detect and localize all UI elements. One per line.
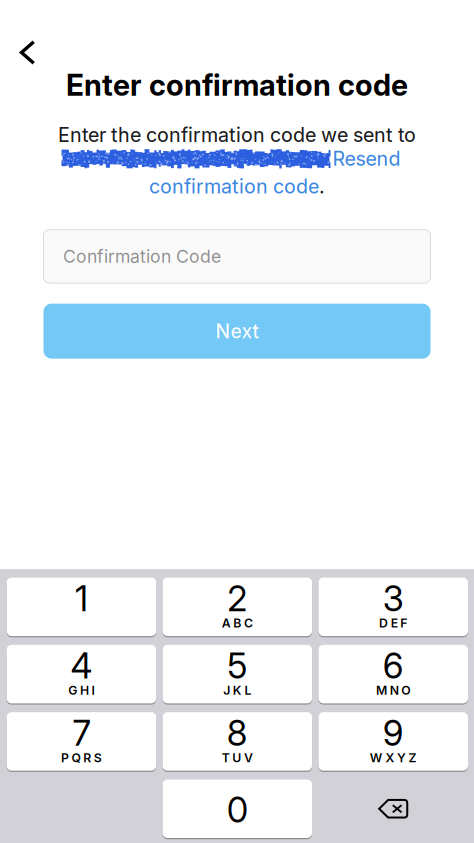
staticText: Enter the confirmation code we sent to: [58, 123, 416, 147]
button[interactable]: 2: [162, 578, 312, 636]
button[interactable]: 1: [7, 578, 156, 636]
staticText: ABC: [222, 616, 253, 630]
staticText: WXYZ: [370, 750, 417, 765]
staticText: 1: [75, 578, 88, 619]
staticText: Enter confirmation code: [66, 67, 408, 103]
button[interactable]: 0: [162, 779, 312, 838]
staticText: 6: [383, 645, 404, 687]
staticText: 5: [227, 645, 247, 687]
staticText: PQRS: [61, 750, 102, 765]
staticText: Confirmation Code: [63, 246, 221, 267]
staticText: Next: [215, 319, 258, 343]
button[interactable]: 6: [318, 645, 468, 703]
staticText: .: [319, 174, 325, 198]
button[interactable]: 3: [318, 578, 468, 636]
staticText: 4: [70, 645, 92, 687]
staticText: Resend: [332, 147, 400, 170]
staticText: 7: [72, 712, 90, 754]
staticText: 9: [383, 712, 404, 754]
staticText: 3: [383, 578, 404, 619]
staticText: 8: [227, 712, 248, 754]
staticText: 0: [227, 789, 248, 831]
button[interactable]: 5: [162, 645, 312, 703]
staticText: confirmation code: [149, 174, 319, 198]
staticText: DEF: [379, 616, 407, 630]
staticText: TUV: [222, 750, 253, 765]
button[interactable]: 9: [318, 712, 468, 771]
staticText: 2: [227, 578, 247, 619]
button[interactable]: 7: [7, 712, 156, 771]
button[interactable]: Back: [0, 33, 49, 72]
button[interactable]: Next: [0, 304, 474, 359]
staticText: MNO: [376, 683, 410, 698]
staticText: JKL: [223, 683, 251, 698]
button[interactable]: 8: [162, 712, 312, 771]
button[interactable]: Delete: [318, 779, 468, 838]
staticText: GHI: [68, 683, 94, 698]
button[interactable]: 4: [7, 645, 156, 703]
